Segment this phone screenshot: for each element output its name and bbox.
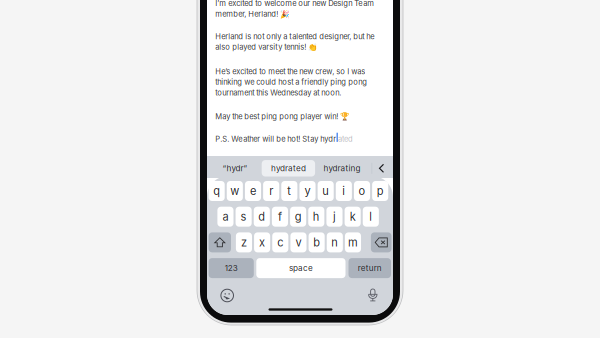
button[interactable]: d (254, 207, 270, 227)
button[interactable]: u (318, 181, 334, 201)
button[interactable]: space (256, 258, 345, 278)
button[interactable]: x (254, 232, 270, 252)
staticText: i (342, 184, 345, 198)
staticText: P.S. Weather will be hot! Stay hydr (215, 134, 336, 143)
button[interactable]: q (209, 181, 225, 201)
staticText: g (295, 210, 302, 223)
staticText: q (213, 184, 220, 198)
staticText: v (295, 236, 301, 249)
button[interactable]: z (236, 232, 252, 252)
staticText: a (222, 210, 228, 223)
staticText: He’s excited to meet the new crew, so I … (215, 67, 365, 76)
button[interactable]: v (290, 232, 306, 252)
staticText: Herland is not only a talented designer,… (215, 32, 374, 41)
button[interactable]: hydrating (315, 158, 369, 178)
staticText: h (313, 210, 320, 223)
button[interactable]: Delete (371, 232, 391, 252)
button[interactable]: hydrated (262, 160, 315, 177)
staticText: hydrating (323, 163, 360, 173)
button[interactable]: h (308, 207, 324, 227)
button[interactable]: c (272, 232, 288, 252)
staticText: r (269, 184, 273, 198)
button[interactable]: More suggestions (372, 158, 390, 178)
staticText: m (348, 236, 358, 249)
staticText: j (333, 210, 336, 223)
staticText: hydrated (271, 163, 306, 173)
staticText: ated (338, 134, 353, 143)
staticText: space (289, 263, 313, 273)
staticText: c (277, 236, 283, 249)
button[interactable]: “hydr” (208, 158, 262, 178)
staticText: s (241, 210, 247, 223)
button[interactable]: l (363, 207, 379, 227)
button[interactable]: t (281, 181, 297, 201)
button[interactable]: y (299, 181, 315, 201)
staticText: thinking we could host a friendly ping p… (215, 77, 367, 87)
button[interactable]: 123 (209, 258, 254, 278)
staticText: f (278, 210, 282, 223)
staticText: p (377, 184, 384, 198)
staticText: w (230, 184, 239, 198)
button[interactable]: Shift (209, 232, 231, 252)
button[interactable]: e (245, 181, 261, 201)
button[interactable]: g (290, 207, 306, 227)
button[interactable]: i (336, 181, 352, 201)
staticText: t (287, 184, 291, 198)
staticText: member, Herland! 🎉 (215, 9, 289, 18)
staticText: I’m excited to welcome our new Design Te… (215, 0, 374, 8)
staticText: return (358, 263, 382, 273)
button[interactable]: j (326, 207, 342, 227)
button[interactable]: p (372, 181, 388, 201)
button[interactable]: f (272, 207, 288, 227)
button[interactable]: w (227, 181, 243, 201)
staticText: l (369, 210, 372, 223)
button[interactable]: a (217, 207, 233, 227)
staticText: “hydr” (222, 163, 247, 173)
staticText: also played varsity tennis! 👏 (215, 42, 317, 52)
button[interactable]: k (345, 207, 361, 227)
button[interactable]: Emoji keyboard (218, 286, 236, 304)
staticText: o (358, 184, 365, 198)
button[interactable]: o (354, 181, 370, 201)
button[interactable]: s (236, 207, 252, 227)
staticText: 123 (225, 263, 238, 273)
button[interactable]: n (327, 232, 343, 252)
button[interactable]: r (263, 181, 279, 201)
button[interactable]: return (348, 258, 391, 278)
staticText: n (331, 236, 338, 249)
button[interactable]: Dictation (365, 286, 381, 304)
staticText: z (241, 236, 247, 249)
staticText: d (258, 210, 265, 223)
button[interactable]: b (309, 232, 325, 252)
staticText: e (250, 184, 256, 198)
staticText: tournament this Wednesday at noon. (215, 88, 341, 97)
staticText: y (304, 184, 310, 198)
staticText: x (259, 236, 265, 249)
staticText: b (313, 236, 320, 249)
button[interactable]: m (345, 232, 361, 252)
staticText: May the best ping pong player win! 🏆 (215, 112, 349, 121)
staticText: k (350, 210, 356, 223)
staticText: u (322, 184, 329, 198)
